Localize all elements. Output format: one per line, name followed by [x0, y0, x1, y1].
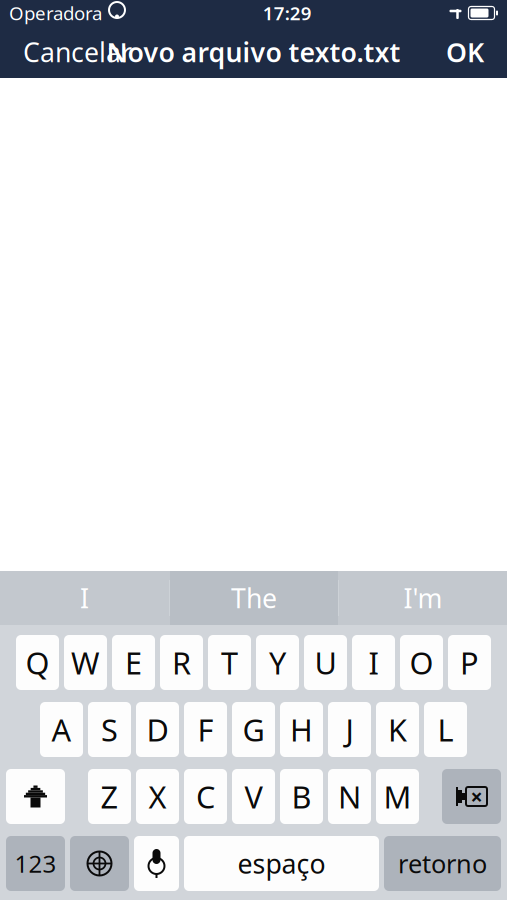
staticText: T [221, 642, 238, 683]
button[interactable]: I [352, 635, 395, 690]
staticText: H [290, 709, 313, 750]
button[interactable]: espaço [184, 836, 379, 891]
staticText: K [388, 709, 407, 750]
button[interactable]: K [376, 702, 419, 757]
staticText: I [368, 642, 378, 683]
button[interactable]: 123 [6, 836, 65, 891]
staticText: × [470, 782, 482, 811]
button[interactable]: M [376, 769, 419, 824]
button[interactable]: A [40, 702, 83, 757]
button[interactable]: Dictate [134, 836, 179, 891]
staticText: E [125, 642, 142, 683]
button[interactable]: R [160, 635, 203, 690]
staticText: P [460, 642, 479, 683]
staticText: G [242, 709, 264, 750]
staticText: Cancelar [23, 34, 132, 70]
button[interactable]: I'm [339, 571, 507, 625]
staticText: A [51, 709, 71, 750]
staticText: J [345, 709, 353, 750]
staticText: R [172, 642, 191, 683]
staticText: N [338, 776, 361, 817]
button[interactable]: Next keyboard [70, 836, 129, 891]
button[interactable]: S [88, 702, 131, 757]
staticText: Novo arquivo texto.txt [106, 34, 400, 70]
button[interactable]: V [232, 769, 275, 824]
button[interactable]: X [136, 769, 179, 824]
staticText: Y [269, 642, 286, 683]
staticText: Operadora [9, 1, 102, 25]
staticText: W [71, 642, 100, 683]
button[interactable]: P [448, 635, 491, 690]
staticText: F [197, 709, 213, 750]
staticText: S [101, 709, 118, 750]
button[interactable]: retorno [384, 836, 501, 891]
button[interactable]: Y [256, 635, 299, 690]
staticText: D [146, 709, 168, 750]
button[interactable]: O [400, 635, 443, 690]
staticText: L [437, 709, 453, 750]
button[interactable]: N [328, 769, 371, 824]
button[interactable]: F [184, 702, 227, 757]
staticText: 17:29 [263, 1, 312, 25]
button[interactable]: Q [16, 635, 59, 690]
staticText: retorno [398, 847, 487, 880]
staticText: I'm [403, 580, 442, 616]
button[interactable]: D [136, 702, 179, 757]
button[interactable]: B [280, 769, 323, 824]
button[interactable]: U [304, 635, 347, 690]
staticText: B [291, 776, 311, 817]
staticText: espaço [237, 846, 325, 881]
button[interactable]: L [424, 702, 467, 757]
staticText: U [314, 642, 336, 683]
staticText: OK [446, 34, 484, 70]
staticText: 123 [14, 848, 56, 879]
button[interactable]: C [184, 769, 227, 824]
button[interactable]: I [0, 571, 169, 625]
button[interactable]: Shift [6, 769, 65, 824]
staticText: O [409, 642, 433, 683]
staticText: The [231, 580, 277, 616]
staticText: V [244, 776, 262, 817]
button[interactable]: Cancelar [13, 30, 142, 74]
staticText: I [80, 580, 89, 616]
button[interactable]: G [232, 702, 275, 757]
button[interactable]: Z [88, 769, 131, 824]
staticText: Q [25, 642, 49, 683]
button[interactable]: H [280, 702, 323, 757]
staticText: Z [100, 776, 118, 817]
staticText: M [383, 776, 411, 817]
button[interactable]: W [64, 635, 107, 690]
staticText: C [196, 776, 215, 817]
button[interactable]: J [328, 702, 371, 757]
button[interactable]: T [208, 635, 251, 690]
button[interactable]: The [170, 571, 338, 625]
button[interactable]: E [112, 635, 155, 690]
button[interactable]: Delete [442, 769, 501, 824]
staticText: X [148, 776, 166, 817]
button[interactable]: OK [436, 30, 494, 74]
